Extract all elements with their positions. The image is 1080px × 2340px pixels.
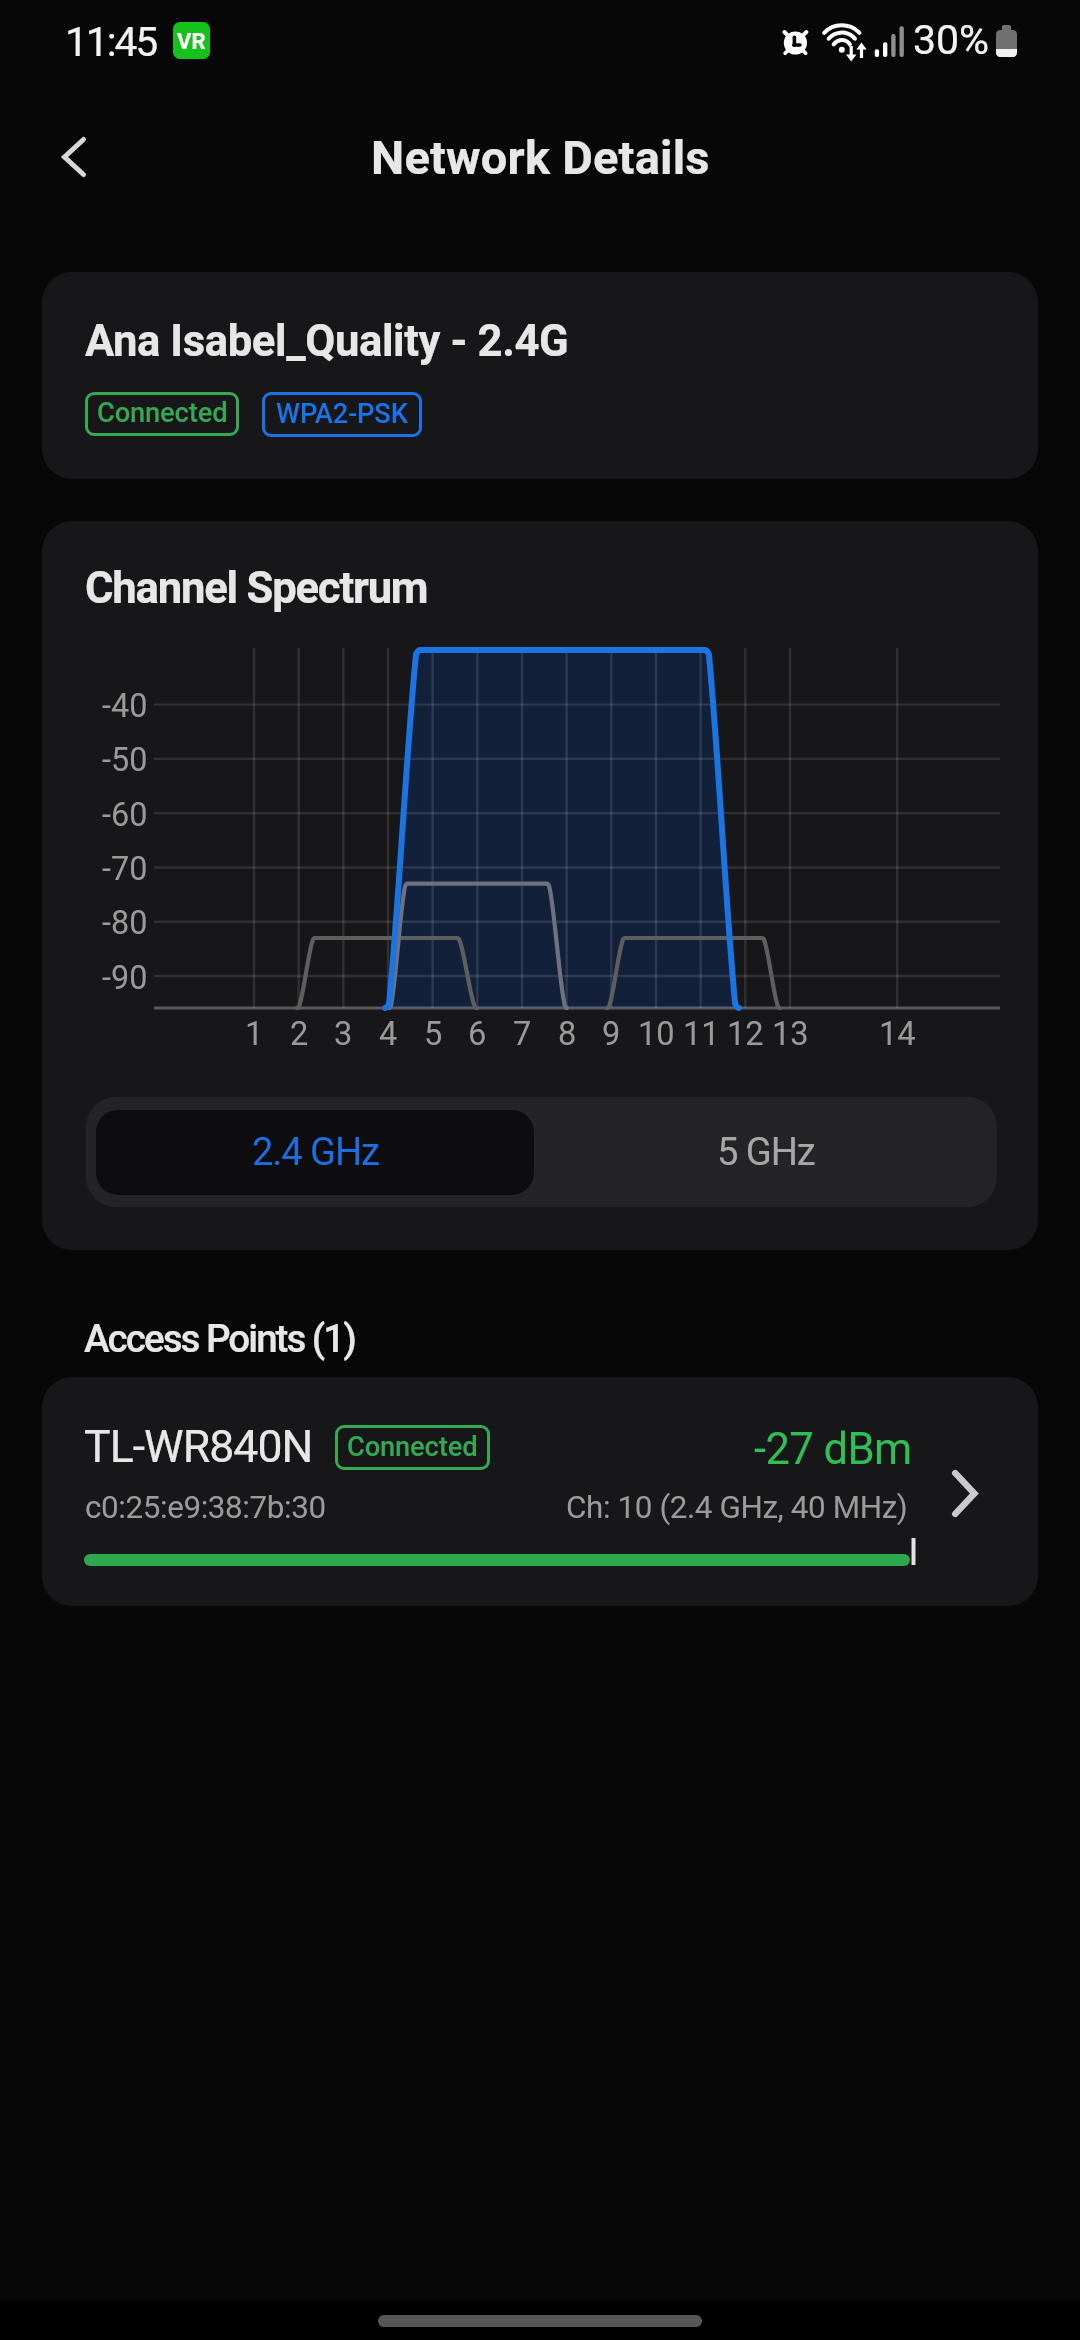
staticText: 12 bbox=[727, 1015, 764, 1053]
staticText: -90 bbox=[102, 959, 148, 997]
staticText: 13 bbox=[772, 1015, 809, 1053]
staticText: -70 bbox=[102, 850, 148, 888]
staticText: 2.4 GHz bbox=[252, 1130, 379, 1175]
button[interactable]: Ana Isabel_Quality - 2.4G bbox=[42, 272, 1038, 479]
staticText: 11:45 bbox=[65, 18, 157, 66]
button[interactable]: 2.4 GHz bbox=[96, 1110, 534, 1195]
staticText: 10 bbox=[638, 1015, 675, 1053]
staticText: Connected bbox=[347, 1431, 478, 1463]
staticText: Ch: 10 (2.4 GHz, 40 MHz) bbox=[566, 1489, 908, 1526]
staticText: WPA2-PSK bbox=[276, 398, 408, 430]
staticText: Access Points (1) bbox=[84, 1316, 355, 1361]
staticText: -60 bbox=[102, 796, 148, 834]
staticText: VR bbox=[177, 29, 206, 55]
staticText: 30% bbox=[913, 16, 990, 64]
staticText: 6 bbox=[468, 1015, 487, 1053]
staticText: 7 bbox=[513, 1015, 532, 1053]
button[interactable]: Back bbox=[34, 117, 114, 197]
staticText: 1 bbox=[245, 1015, 264, 1053]
staticText: Ana Isabel_Quality - 2.4G bbox=[85, 316, 569, 367]
staticText: 9 bbox=[602, 1015, 621, 1053]
staticText: c0:25:e9:38:7b:30 bbox=[85, 1489, 326, 1526]
staticText: 5 GHz bbox=[717, 1130, 815, 1175]
button[interactable]: TL-WR840N bbox=[42, 1377, 1038, 1606]
staticText: 8 bbox=[558, 1015, 577, 1053]
staticText: Network Details bbox=[371, 130, 710, 185]
staticText: -80 bbox=[102, 904, 148, 942]
staticText: 5 bbox=[424, 1015, 443, 1053]
staticText: 11 bbox=[683, 1015, 720, 1053]
staticText: 3 bbox=[334, 1015, 353, 1053]
staticText: -40 bbox=[102, 687, 148, 725]
staticText: -27 dBm bbox=[754, 1424, 912, 1475]
staticText: -50 bbox=[102, 741, 148, 779]
staticText: 14 bbox=[879, 1015, 916, 1053]
button[interactable]: 5 GHz bbox=[545, 1110, 987, 1195]
button[interactable]: Details bbox=[948, 1468, 981, 1519]
staticText: 4 bbox=[379, 1015, 398, 1053]
staticText: TL-WR840N bbox=[84, 1421, 313, 1473]
staticText: Channel Spectrum bbox=[85, 563, 428, 614]
staticText: Connected bbox=[97, 397, 228, 429]
staticText: 2 bbox=[290, 1015, 309, 1053]
